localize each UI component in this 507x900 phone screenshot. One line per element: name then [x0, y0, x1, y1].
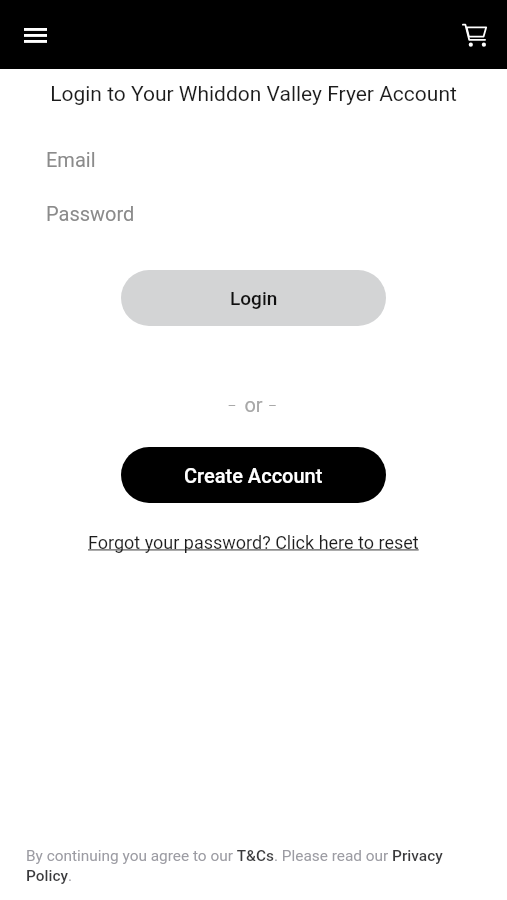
button[interactable]: Password: [0, 186, 507, 240]
staticText: Create Account: [184, 464, 323, 487]
button[interactable]: Forgot your password? Click here to rese…: [88, 532, 419, 553]
button[interactable]: Menu: [11, 11, 59, 59]
button[interactable]: Create Account: [121, 447, 386, 503]
button[interactable]: Login: [121, 270, 386, 326]
staticText: By continuing you agree to our T&Cs. Ple…: [26, 847, 466, 885]
staticText: Password: [46, 202, 135, 225]
staticText: Login to Your Whiddon Valley Fryer Accou…: [0, 82, 507, 107]
button[interactable]: Shopping cart: [450, 11, 498, 59]
button[interactable]: Email: [0, 132, 507, 186]
staticText: – or –: [0, 393, 507, 416]
staticText: Login: [230, 287, 278, 309]
staticText: Email: [46, 148, 96, 171]
